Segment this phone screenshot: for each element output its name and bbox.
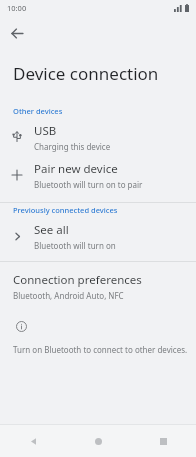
- staticText: 10:00: [7, 3, 27, 13]
- staticText: Bluetooth will turn on to pair: [34, 179, 143, 190]
- button[interactable]: USB: [0, 118, 196, 156]
- button[interactable]: Pair new device: [0, 156, 196, 194]
- button[interactable]: Back: [0, 16, 34, 50]
- button[interactable]: Home: [66, 425, 131, 457]
- button[interactable]: See all: [0, 217, 196, 255]
- staticText: Connection preferences: [13, 272, 142, 288]
- staticText: Bluetooth will turn on: [34, 240, 116, 251]
- staticText: See all: [34, 222, 69, 238]
- staticText: USB: [34, 123, 57, 139]
- staticText: Device connection: [13, 62, 159, 85]
- staticText: Bluetooth, Android Auto, NFC: [13, 290, 124, 301]
- button[interactable]: Back: [0, 425, 66, 457]
- staticText: Charging this device: [34, 141, 111, 152]
- staticText: Pair new device: [34, 161, 118, 177]
- button[interactable]: Information: [14, 319, 28, 333]
- staticText: Other devices: [13, 106, 63, 116]
- button[interactable]: Recent apps: [131, 425, 196, 457]
- staticText: Previously connected devices: [13, 205, 118, 215]
- staticText: Turn on Bluetooth to connect to other de…: [13, 344, 188, 355]
- button[interactable]: Connection preferences: [0, 268, 196, 305]
